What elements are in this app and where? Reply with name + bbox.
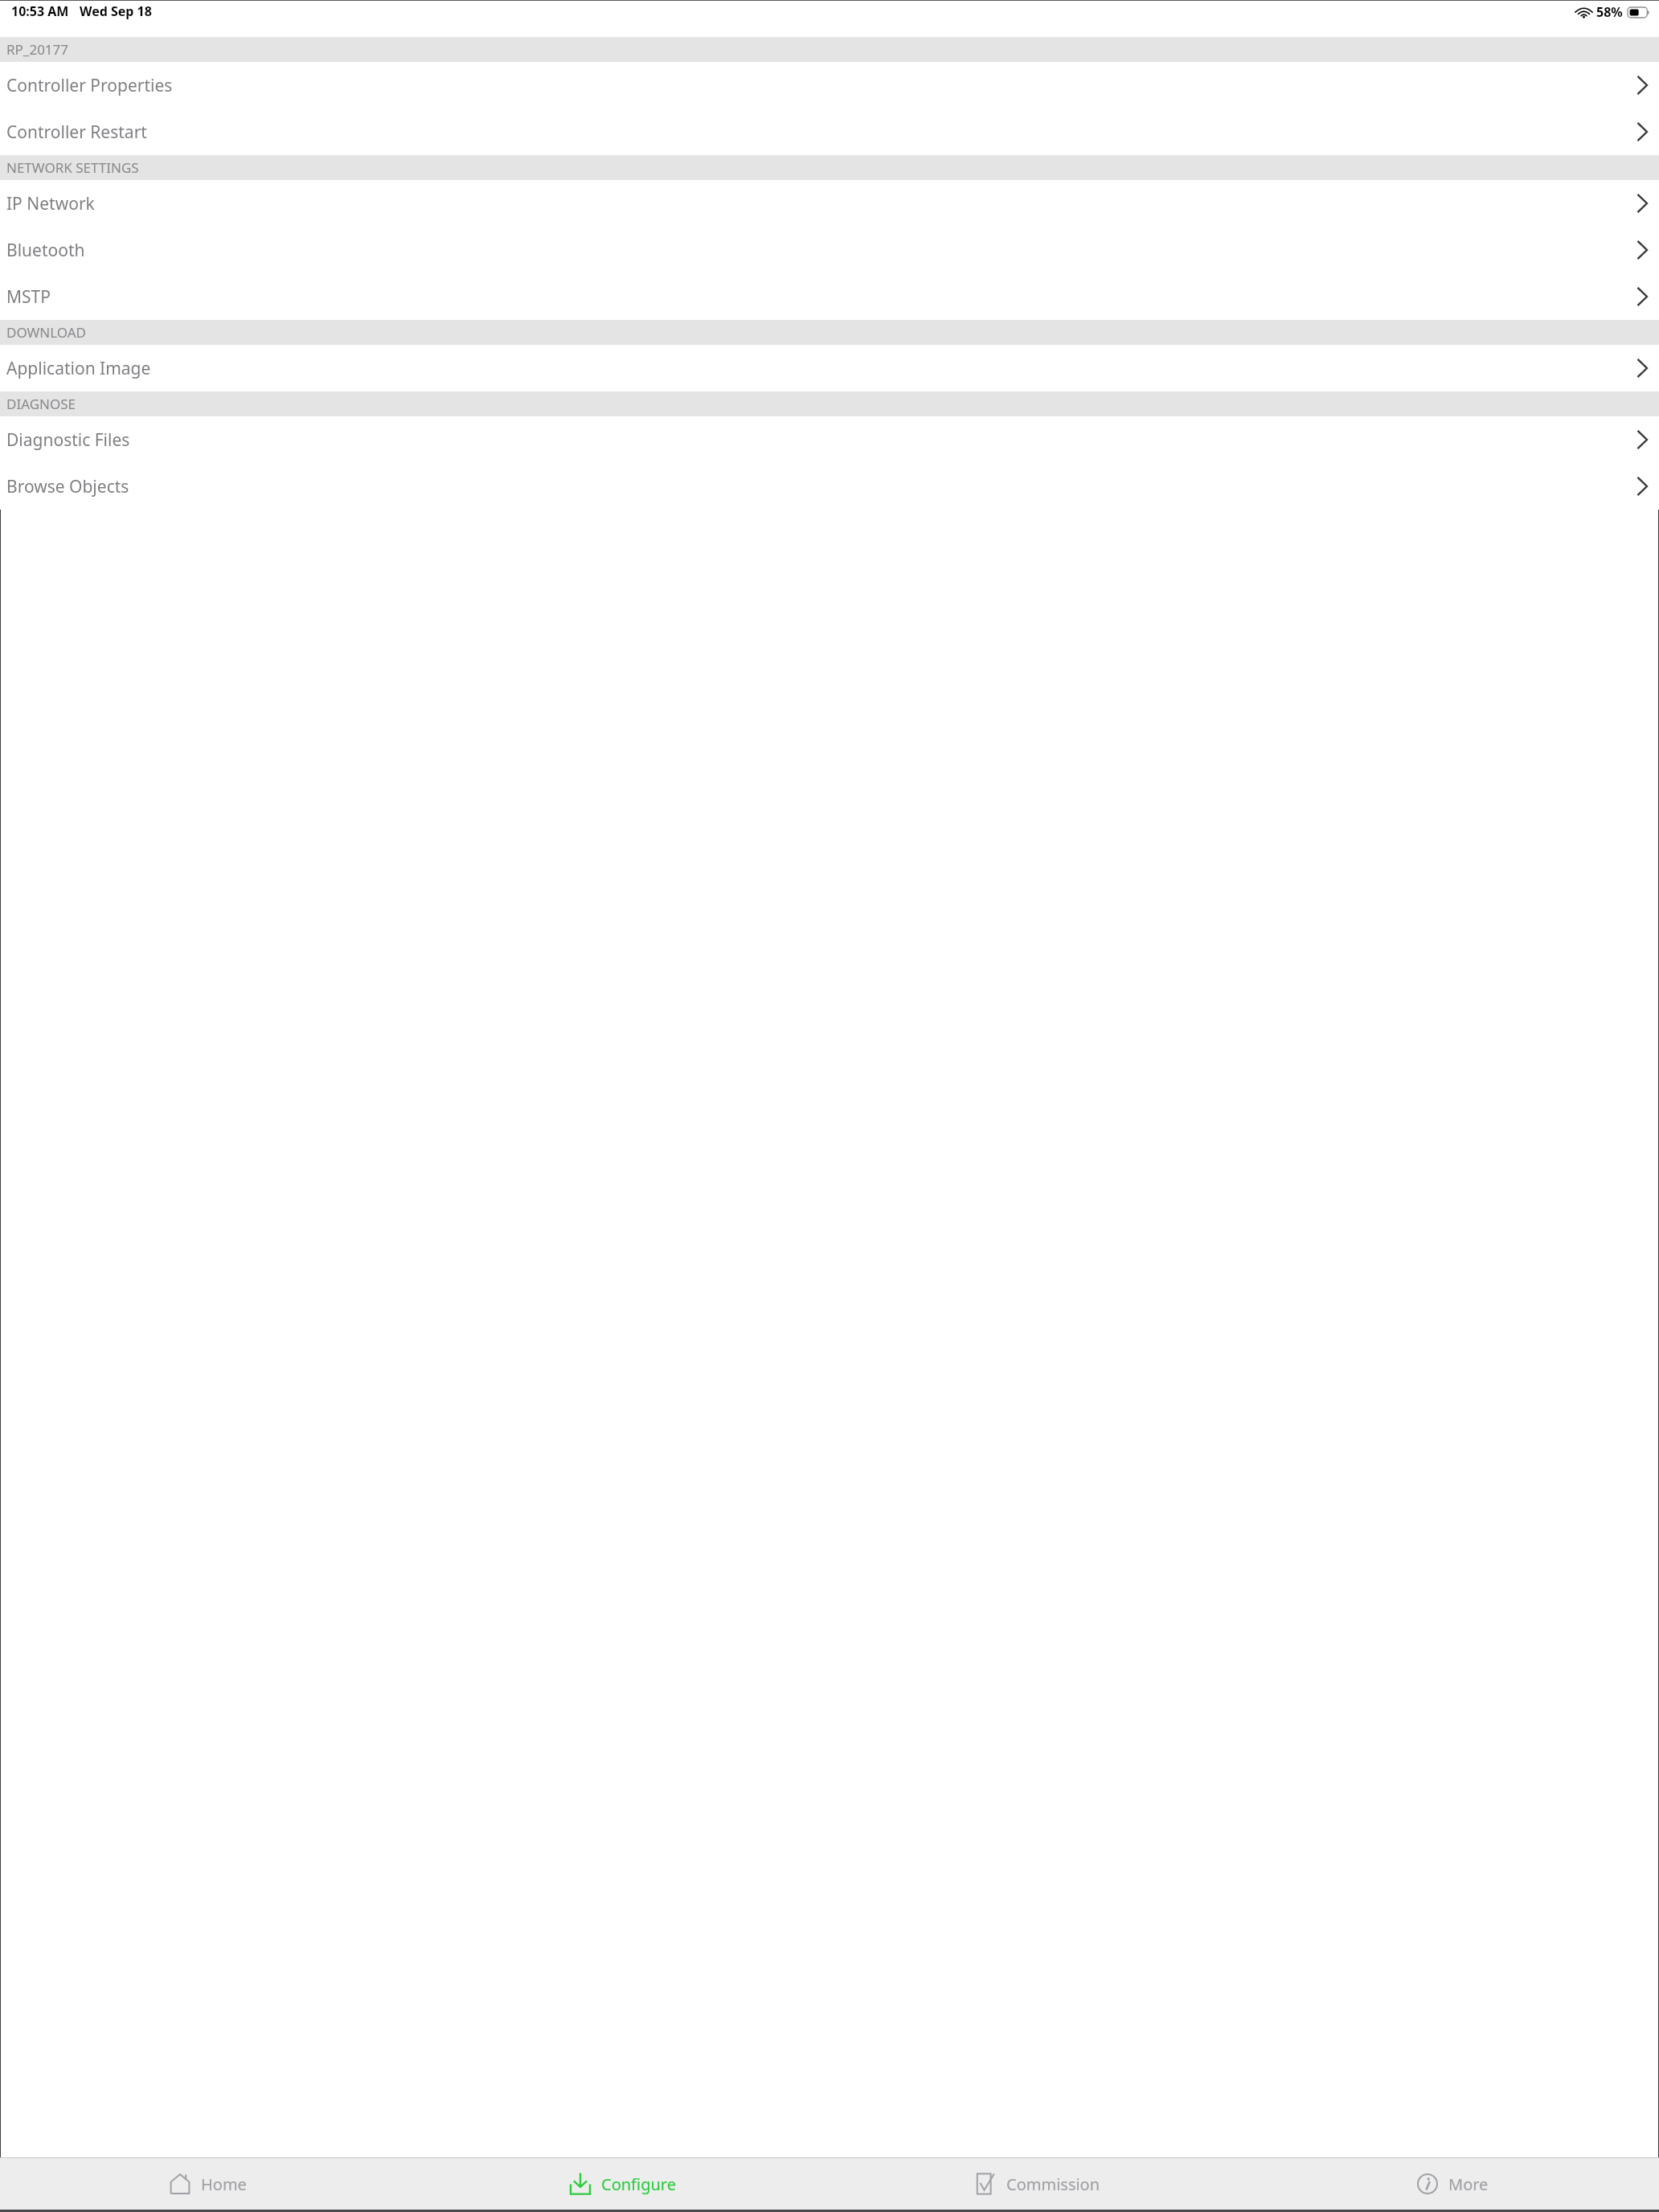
button[interactable]: Browse Objects <box>0 463 1659 510</box>
staticText: Controller Properties <box>6 74 173 97</box>
staticText: 10:53 AM <box>11 2 69 20</box>
button[interactable]: Application Image <box>0 345 1659 391</box>
button[interactable]: Controller Properties <box>0 62 1659 109</box>
button[interactable]: Bluetooth <box>0 227 1659 273</box>
staticText: DIAGNOSE <box>6 395 76 413</box>
other: Home <box>168 2172 192 2196</box>
other: Configure <box>568 2172 592 2196</box>
button[interactable]: IP Network <box>0 180 1659 227</box>
other: Commission <box>973 2172 997 2196</box>
staticText: More <box>1448 2173 1489 2195</box>
button[interactable]: More <box>1244 2158 1659 2210</box>
staticText: Wed Sep 18 <box>80 2 152 20</box>
staticText: Commission <box>1006 2173 1100 2195</box>
button[interactable]: Commission <box>829 2158 1244 2210</box>
staticText: Application Image <box>6 357 151 380</box>
staticText: DOWNLOAD <box>6 323 87 342</box>
staticText: NETWORK SETTINGS <box>6 158 139 177</box>
staticText: Browse Objects <box>6 475 129 498</box>
staticText: Configure <box>601 2173 676 2195</box>
staticText: 58% <box>1596 3 1623 21</box>
button[interactable]: Diagnostic Files <box>0 416 1659 463</box>
staticText: MSTP <box>6 285 51 309</box>
staticText: Home <box>201 2173 247 2195</box>
button[interactable]: MSTP <box>0 273 1659 320</box>
staticText: Diagnostic Files <box>6 428 130 452</box>
other: More <box>1415 2172 1440 2196</box>
staticText: RP_20177 <box>6 40 69 59</box>
button[interactable]: Home <box>0 2158 415 2210</box>
staticText: Bluetooth <box>6 239 85 262</box>
button[interactable]: Controller Restart <box>0 109 1659 155</box>
button[interactable]: Configure <box>415 2158 829 2210</box>
staticText: IP Network <box>6 192 95 215</box>
staticText: Controller Restart <box>6 121 147 144</box>
